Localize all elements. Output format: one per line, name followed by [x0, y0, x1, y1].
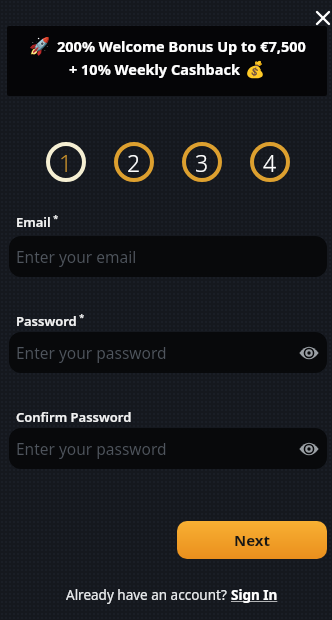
button[interactable]: [296, 436, 322, 462]
button[interactable]: 3: [182, 142, 222, 182]
staticText: 3: [195, 147, 209, 178]
staticText: + 10% Weekly Cashback: [69, 59, 240, 79]
staticText: Enter your password: [16, 438, 167, 459]
staticText: 2: [127, 147, 141, 178]
staticText: *: [77, 311, 85, 323]
staticText: *: [51, 212, 59, 224]
button[interactable]: 1: [46, 142, 86, 182]
staticText: Enter your email: [16, 246, 137, 267]
staticText: 🚀: [29, 36, 51, 56]
button[interactable]: Enter your email: [9, 236, 327, 277]
staticText: Email: [16, 213, 51, 231]
button[interactable]: [312, 7, 332, 29]
staticText: Enter your password: [16, 342, 167, 363]
staticText: Confirm Password: [16, 408, 132, 426]
button[interactable]: Enter your password: [9, 332, 327, 373]
button[interactable]: [296, 340, 322, 366]
button[interactable]: Sign In: [231, 586, 278, 604]
staticText: 4: [263, 147, 277, 178]
staticText: 💰: [245, 60, 265, 79]
staticText: 1: [59, 147, 73, 178]
staticText: Already have an account?: [66, 586, 231, 604]
staticText: 200% Welcome Bonus Up to €7,500: [57, 36, 306, 56]
button[interactable]: 2: [114, 142, 154, 182]
button[interactable]: Next: [177, 521, 327, 559]
button[interactable]: 4: [250, 142, 290, 182]
button[interactable]: Enter your password: [9, 428, 327, 469]
staticText: Sign In: [231, 586, 278, 604]
staticText: Password: [16, 312, 77, 330]
staticText: Next: [234, 530, 271, 550]
